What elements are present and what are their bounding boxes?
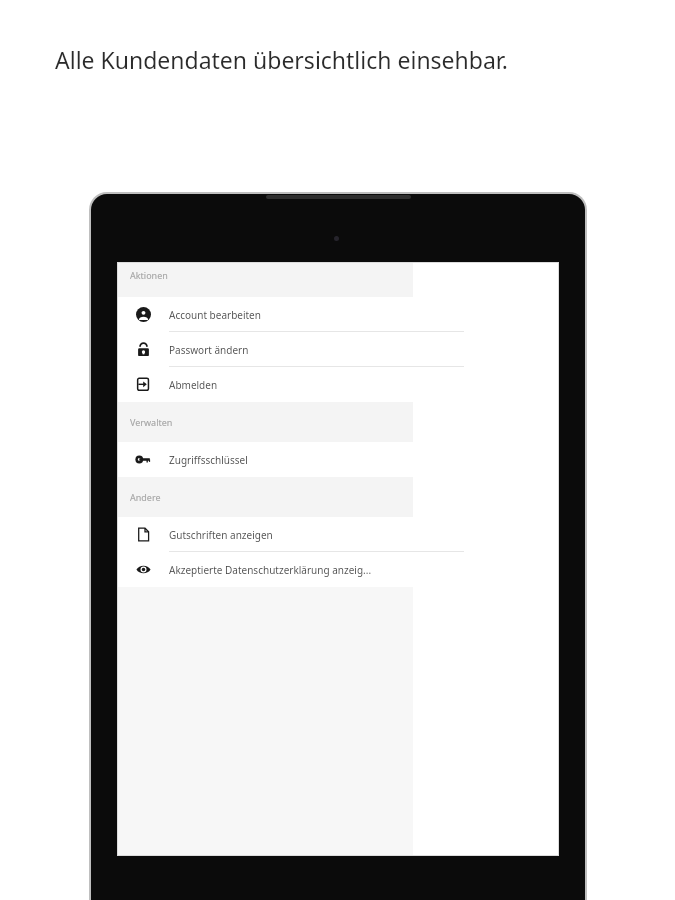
staticText: Andere bbox=[130, 491, 161, 503]
button[interactable]: Account bearbeiten bbox=[118, 297, 413, 332]
button[interactable]: Abmelden bbox=[118, 367, 413, 402]
other: Abmelden bbox=[136, 377, 151, 392]
staticText: Alle Kundendaten übersichtlich einsehbar… bbox=[55, 44, 508, 75]
staticText: Abmelden bbox=[169, 378, 218, 392]
button[interactable]: Gutschriften anzeigen bbox=[118, 517, 413, 552]
button[interactable]: Passwort ändern bbox=[118, 332, 413, 367]
other: Account bearbeiten bbox=[136, 307, 151, 322]
staticText: Zugriffsschlüssel bbox=[169, 453, 248, 467]
staticText: Gutschriften anzeigen bbox=[169, 528, 273, 542]
other: Gutschriften anzeigen bbox=[136, 527, 151, 542]
button[interactable]: Akzeptierte Datenschutzerklärung anzeige… bbox=[118, 552, 413, 587]
staticText: Verwalten bbox=[130, 416, 173, 428]
staticText: Account bearbeiten bbox=[169, 308, 261, 322]
button[interactable]: Zugriffsschlüssel bbox=[118, 442, 413, 477]
other: Akzeptierte Datenschutzerklärung anzeige… bbox=[136, 562, 151, 577]
other: Zugriffsschlüssel bbox=[136, 452, 151, 467]
staticText: Akzeptierte Datenschutzerklärung anzeig.… bbox=[169, 563, 372, 577]
other: Passwort ändern bbox=[136, 342, 151, 357]
staticText: Passwort ändern bbox=[169, 343, 249, 357]
staticText: Aktionen bbox=[130, 269, 168, 281]
